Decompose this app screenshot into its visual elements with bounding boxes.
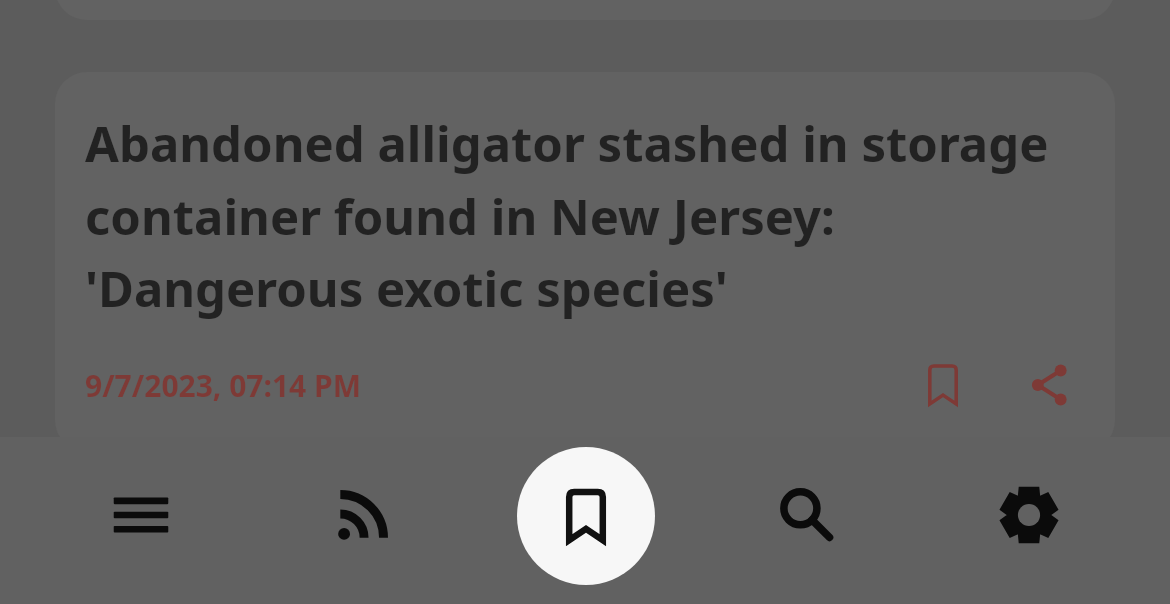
button[interactable]: Feeds: [303, 455, 423, 575]
button[interactable]: Search: [746, 455, 866, 575]
button[interactable]: Bookmark article: [909, 351, 977, 419]
button[interactable]: Settings: [969, 455, 1089, 575]
button[interactable]: Abandoned alligator stashed in storage c…: [55, 72, 1115, 452]
staticText: Abandoned alligator stashed in storage c…: [85, 110, 1081, 321]
button[interactable]: Menu: [81, 455, 201, 575]
button[interactable]: Saved articles: [517, 447, 655, 585]
button[interactable]: Share article: [1017, 351, 1085, 419]
staticText: 9/7/2023, 07:14 PM: [85, 365, 361, 406]
